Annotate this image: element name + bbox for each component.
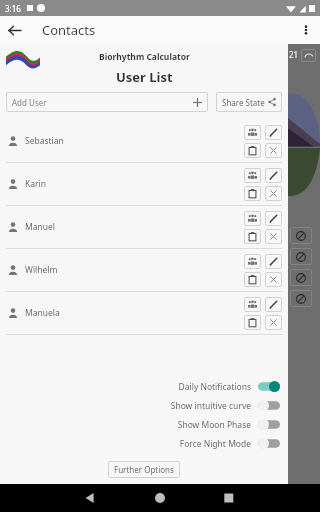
button[interactable]: Manuel [0,206,288,249]
button[interactable]: Copy [244,143,261,158]
staticText: Wilhelm [25,264,58,276]
button[interactable]: Group [244,211,261,226]
staticText: Share State [222,97,265,108]
button[interactable]: Show Moon Phase [0,415,288,434]
button[interactable]: Copy [244,229,261,244]
staticText: Add User [12,97,47,108]
button[interactable]: Manuela [0,292,288,335]
button[interactable]: Edit [265,254,282,269]
staticText: Contacts [42,21,96,39]
button[interactable]: Group [244,254,261,269]
button[interactable]: Group [244,297,261,312]
button[interactable]: Add User [6,92,208,112]
button[interactable]: Group [244,168,261,183]
button[interactable]: More options [292,16,320,44]
button[interactable]: Back [0,16,28,44]
button[interactable]: Force Night Mode [0,434,288,453]
staticText: 21 [289,49,299,60]
button[interactable]: Edit [265,125,282,140]
button[interactable]: Copy [244,315,261,330]
button[interactable]: Edit [265,297,282,312]
staticText: Sebastian [25,135,64,147]
button[interactable]: Delete [265,143,282,158]
button[interactable]: Delete [265,315,282,330]
button[interactable]: Share State [216,92,282,112]
button[interactable]: Delete [265,272,282,287]
staticText: User List [116,68,173,86]
staticText: Daily Notifications [178,381,251,393]
button[interactable]: Group [244,125,261,140]
staticText: Show intuitive curve [170,400,251,412]
button[interactable]: Copy [244,186,261,201]
button[interactable]: Wilhelm [0,249,288,292]
button[interactable]: Daily Notifications [0,377,288,396]
staticText: Show Moon Phase [177,419,251,431]
staticText: Karin [25,178,46,190]
button[interactable]: Copy [244,272,261,287]
staticText: 3:16 [5,3,21,14]
staticText: Manuel [25,221,55,233]
staticText: Force Night Mode [179,438,251,450]
staticText: Further Options [114,464,174,475]
button[interactable]: Show intuitive curve [0,396,288,415]
staticText: Biorhythm Calculator [99,51,190,63]
button[interactable]: Further Options [108,461,180,478]
staticText: Manuela [25,307,60,319]
button[interactable]: Edit [265,211,282,226]
button[interactable]: Edit [265,168,282,183]
button[interactable]: Sebastian [0,120,288,163]
button[interactable]: Delete [265,186,282,201]
button[interactable]: Karin [0,163,288,206]
button[interactable]: Delete [265,229,282,244]
